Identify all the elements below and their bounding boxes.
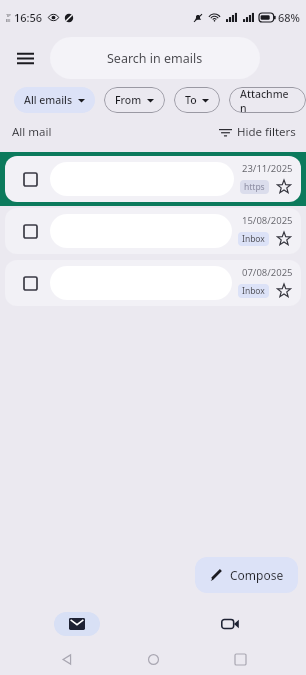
button[interactable]: Meet [153, 605, 306, 643]
staticText: All mail [12, 124, 52, 140]
button[interactable]: Attachmen [229, 87, 306, 113]
staticText: Attachmen [240, 87, 295, 113]
button[interactable]: Hide filters [219, 124, 296, 140]
staticText: 1P [6, 13, 11, 18]
button[interactable]: Select conversation [5, 156, 301, 202]
button[interactable]: From [104, 87, 165, 113]
button[interactable]: Recent apps [220, 643, 260, 675]
staticText: Hide filters [237, 124, 296, 140]
button[interactable]: Back [47, 643, 87, 675]
staticText: 16:56 [14, 10, 43, 25]
button[interactable]: Select conversation [5, 208, 301, 254]
staticText: 23/11/2025 [242, 162, 293, 175]
staticText: https [244, 181, 265, 193]
button[interactable]: Open navigation menu [6, 39, 44, 77]
button[interactable]: All emails [14, 87, 95, 113]
button[interactable]: All mail [12, 124, 52, 140]
staticText: All emails [24, 93, 73, 107]
button[interactable]: To [174, 87, 220, 113]
button[interactable]: Select conversation [19, 220, 41, 242]
staticText: Search in emails [107, 50, 203, 67]
staticText: Compose [230, 567, 284, 583]
button[interactable]: Star conversation [275, 178, 293, 196]
staticText: EE [6, 18, 11, 23]
staticText: From [115, 93, 142, 107]
button[interactable]: Star conversation [275, 230, 293, 248]
button[interactable]: Select conversation [19, 168, 41, 190]
staticText: Inbox [242, 233, 265, 245]
staticText: Inbox [242, 285, 265, 297]
staticText: 07/08/2025 [242, 266, 293, 279]
staticText: 15/08/2025 [242, 214, 293, 227]
button[interactable]: Mail [0, 605, 153, 643]
button[interactable]: Star conversation [275, 282, 293, 300]
button[interactable]: Search in emails [50, 37, 260, 79]
button[interactable]: Select conversation [5, 260, 301, 306]
staticText: 68% [278, 10, 300, 25]
button[interactable]: Compose [195, 557, 298, 593]
staticText: To [185, 93, 197, 107]
button[interactable]: Select conversation [19, 272, 41, 294]
button[interactable]: Home [133, 643, 173, 675]
